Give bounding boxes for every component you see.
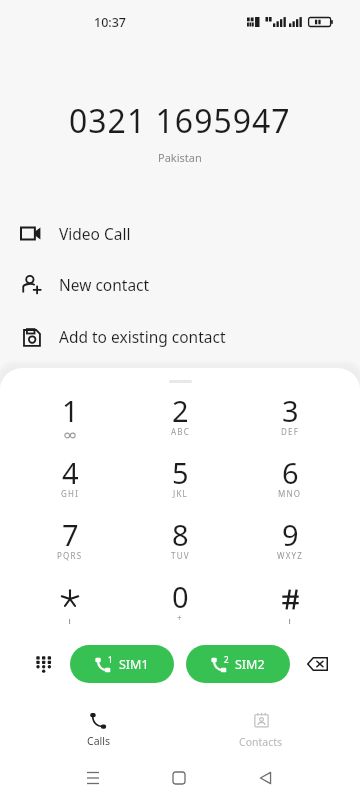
staticText: 2 — [172, 391, 189, 430]
staticText: 2 — [224, 654, 229, 665]
staticText: 3 — [282, 391, 299, 430]
staticText: JKL — [173, 488, 188, 499]
staticText: 4 — [62, 453, 79, 492]
staticText: ABC — [171, 426, 190, 437]
staticText: 7 — [62, 515, 79, 554]
staticText: SIM1 — [119, 656, 149, 673]
button[interactable]: Add to existing contact — [0, 311, 360, 361]
button[interactable]: 2 — [186, 645, 290, 683]
staticText: DEF — [281, 426, 300, 437]
staticText: 0321 1695947 — [69, 99, 291, 143]
staticText: TUV — [171, 550, 190, 561]
staticText: 8 — [172, 515, 189, 554]
staticText: 5 — [172, 453, 189, 492]
staticText: + — [177, 612, 183, 623]
staticText: SIM2 — [235, 656, 265, 673]
button[interactable]: 3 — [235, 388, 345, 450]
staticText: Contacts — [239, 735, 283, 749]
button[interactable]: Contacts — [221, 704, 301, 756]
staticText: Calls — [87, 734, 110, 748]
button[interactable]: 9 — [235, 512, 345, 574]
staticText: MNO — [278, 488, 302, 499]
button[interactable]: 0 — [125, 574, 235, 636]
button[interactable]: New contact — [0, 259, 360, 309]
button[interactable]: 2 — [125, 388, 235, 450]
staticText: Video Call — [59, 223, 131, 244]
staticText: 1 — [62, 391, 79, 430]
button[interactable]: 1 — [70, 645, 174, 683]
staticText: 1 — [108, 654, 113, 665]
staticText: GHI — [61, 488, 80, 499]
button[interactable]: Dialpad — [25, 647, 59, 681]
button[interactable]: Backspace — [300, 647, 334, 681]
button[interactable]: Video Call — [0, 208, 360, 258]
button[interactable]: Calls — [58, 704, 138, 756]
staticText: New contact — [59, 274, 150, 295]
button[interactable]: 8 — [125, 512, 235, 574]
button[interactable]: 4 — [15, 450, 125, 512]
staticText: WXYZ — [277, 550, 304, 561]
button[interactable]: 5 — [125, 450, 235, 512]
staticText: Add to existing contact — [59, 326, 226, 347]
button[interactable]: 1 — [15, 388, 125, 450]
staticText: 0 — [172, 577, 189, 616]
staticText: 10:37 — [94, 14, 127, 31]
button[interactable] — [15, 574, 125, 636]
button[interactable]: Back — [243, 756, 287, 800]
button[interactable]: Recents — [71, 756, 115, 800]
staticText: Pakistan — [158, 150, 202, 165]
staticText: 6 — [282, 453, 299, 492]
button[interactable]: Home — [157, 756, 201, 800]
button[interactable]: 6 — [235, 450, 345, 512]
button[interactable] — [235, 574, 345, 636]
staticText: 9 — [282, 515, 299, 554]
staticText: PQRS — [57, 550, 83, 561]
button[interactable]: 7 — [15, 512, 125, 574]
